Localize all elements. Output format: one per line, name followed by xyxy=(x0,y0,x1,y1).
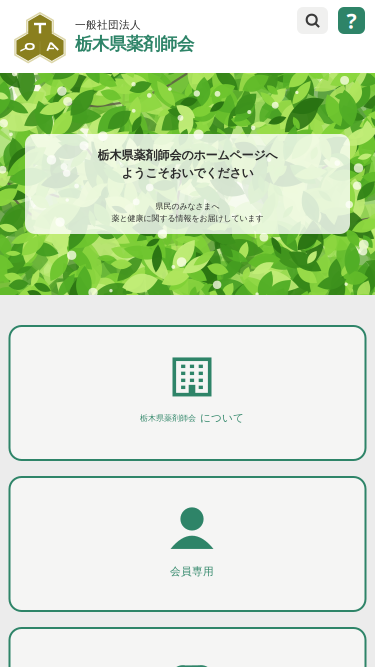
staticText: 栃木県薬剤師会 xyxy=(140,413,196,423)
button[interactable]: このサイトについて xyxy=(338,7,365,34)
staticText: 栃木県薬剤師会のホームページへ xyxy=(97,148,277,163)
staticText: 県民のみなさまへ xyxy=(155,201,219,211)
button[interactable]: 会員専用 xyxy=(9,477,365,611)
staticText: 一般社団法人 xyxy=(75,18,141,31)
button[interactable]: サイト内検索 xyxy=(297,7,328,34)
button[interactable]: 関係団体 xyxy=(9,628,365,667)
staticText: 薬と健康に関する情報をお届けしています xyxy=(111,213,263,223)
staticText: 栃木県薬剤師会 xyxy=(75,33,194,55)
staticText: ようこそおいでください xyxy=(121,166,253,180)
button[interactable]: 栃木県薬剤師会 xyxy=(9,326,365,460)
staticText: ? xyxy=(346,6,356,35)
staticText: について xyxy=(200,411,244,424)
staticText: 会員専用 xyxy=(170,565,214,578)
